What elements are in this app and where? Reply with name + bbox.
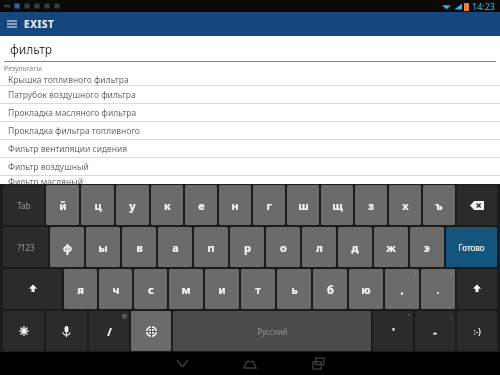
staticText: п [207,240,215,255]
button[interactable]: ж [374,227,408,267]
button[interactable]: г [253,185,285,225]
staticText: и [218,282,226,297]
button[interactable]: :-) [457,311,497,351]
button[interactable]: к [151,185,183,225]
staticText: ы [98,240,108,255]
button[interactable]: э [410,227,444,267]
button[interactable]: Backspace [457,185,497,225]
staticText: Tab [17,200,31,211]
button[interactable]: ? [421,269,455,309]
staticText: ъ [435,198,443,213]
staticText: ю [361,282,371,297]
button[interactable]: Shift [3,269,62,309]
staticText: EXIST [24,17,55,31]
button[interactable]: й [46,185,79,225]
button[interactable]: п [194,227,228,267]
staticText: ж [386,240,396,255]
button[interactable]: Shift [457,269,497,309]
staticText: @ [122,312,127,319]
button[interactable]: ъ [423,185,455,225]
staticText: , [400,282,404,297]
button[interactable]: Recent apps [305,352,331,375]
staticText: ч [112,282,120,297]
button[interactable]: Change language [131,311,171,351]
button[interactable]: б [313,269,347,309]
button[interactable]: в [122,227,156,267]
button[interactable]: Keyboard settings [3,311,44,351]
button[interactable]: Готово [446,227,497,267]
button[interactable]: т [241,269,275,309]
button[interactable]: ! [385,269,419,309]
staticText: б [327,282,334,297]
button[interactable]: @ [89,311,129,351]
button[interactable]: я [64,269,97,309]
button[interactable]: Tab [3,185,44,225]
button[interactable]: Voice input [46,311,87,351]
staticText: я [77,282,84,297]
button[interactable]: Фильтр воздушный [0,158,500,176]
staticText: у [129,198,136,213]
button[interactable]: м [169,269,203,309]
staticText: ! [415,270,417,277]
button[interactable]: _ [415,311,455,351]
button[interactable]: Прокладка масляного фильтра [0,104,500,122]
staticText: х [402,198,409,213]
button[interactable]: и [205,269,239,309]
button[interactable]: Патрубок воздушного фильтра [0,86,500,104]
button[interactable]: а [158,227,192,267]
staticText: Готово [458,242,485,253]
staticText: л [316,240,323,255]
button[interactable]: " [373,311,413,351]
staticText: Крышка топливного фильтра [8,74,129,85]
button[interactable]: ц [81,185,114,225]
staticText: Фильтр воздушный [8,161,89,173]
staticText: э [424,240,430,255]
staticText: ц [94,198,102,213]
button[interactable]: ь [277,269,311,309]
button[interactable]: ю [349,269,383,309]
button[interactable]: з [355,185,387,225]
staticText: Результаты [4,64,42,74]
button[interactable]: ф [50,227,84,267]
button[interactable]: ы [86,227,120,267]
button[interactable]: фильтр [0,36,500,62]
button[interactable]: у [116,185,149,225]
button[interactable]: Hide keyboard [169,352,195,375]
staticText: д [351,240,359,255]
button[interactable]: н [219,185,251,225]
staticText: з [368,198,374,213]
button[interactable]: р [230,227,264,267]
button[interactable]: ч [99,269,132,309]
staticText: т [255,282,261,297]
button[interactable]: ?123 [3,227,48,267]
button[interactable]: Open navigation menu [0,12,24,36]
button[interactable]: Home [237,352,263,375]
staticText: ш [298,198,309,213]
button[interactable]: х [389,185,421,225]
button[interactable]: д [338,227,372,267]
staticText: ь [291,282,298,297]
button[interactable]: Крышка топливного фильтра [0,74,500,86]
button[interactable]: с [134,269,167,309]
button[interactable]: щ [321,185,353,225]
staticText: с [148,282,154,297]
staticText: :-) [473,326,481,337]
button[interactable]: Русский [173,311,371,351]
staticText: Фильтр вентиляции сидения [8,143,128,155]
staticText: 14:23 [472,0,496,12]
staticText: а [172,240,179,255]
staticText: н [231,198,239,213]
staticText: щ [332,198,343,213]
button[interactable]: Фильтр масляный [0,176,500,184]
button[interactable]: ш [287,185,319,225]
staticText: - [433,324,437,339]
button[interactable]: Фильтр вентиляции сидения [0,140,500,158]
button[interactable]: л [302,227,336,267]
button[interactable]: Прокладка фильтра топливного [0,122,500,140]
staticText: г [266,198,272,213]
button[interactable]: о [266,227,300,267]
staticText: Прокладка фильтра топливного [8,125,140,137]
staticText: ф [63,240,72,255]
staticText: _ [450,312,453,319]
button[interactable]: е [185,185,217,225]
